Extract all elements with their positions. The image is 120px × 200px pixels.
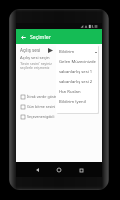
button[interactable]: İtirak vardır göstr [16, 93, 102, 100]
staticText: Seçevenenigdoli [27, 114, 55, 119]
staticText: Açılış sesi [20, 47, 41, 53]
button[interactable]: Bildirim (yeni) [59, 97, 98, 107]
staticText: İtirak vardır göstr [27, 94, 57, 99]
staticText: Gün bitme sesini [27, 104, 56, 109]
button[interactable]: Bildirim [59, 47, 98, 57]
staticText: Seçimler [30, 33, 51, 40]
staticText: Gelen Müzecinizde [59, 59, 96, 65]
button[interactable]: Back [29, 164, 45, 176]
staticText: 'Sesin sesini' neyiniz seçilerle erişmen… [20, 61, 52, 70]
staticText: Bildirim (yeni) [59, 99, 87, 105]
staticText: Açılış sesi seçin [20, 55, 50, 61]
staticText: sabanlarlış sesi 2 [59, 79, 93, 85]
button[interactable]: Home [51, 164, 67, 176]
button[interactable]: Seçevenenigdoli [16, 113, 102, 120]
button[interactable]: Açılış sesi [20, 46, 72, 54]
button[interactable]: Hızı Ruslan [59, 87, 98, 97]
staticText: Bildirim [59, 49, 75, 55]
button[interactable]: Gün bitme sesini [16, 103, 102, 110]
button[interactable]: sabanlarlış sesi 1 [59, 67, 98, 77]
staticText: Hızı Ruslan [59, 89, 81, 95]
button[interactable]: Gelen Müzecinizde [59, 57, 98, 67]
button[interactable]: Back [18, 32, 28, 42]
staticText: sabanlarlış sesi 1 [59, 69, 93, 75]
button[interactable]: Recent apps [73, 164, 89, 176]
button[interactable]: sabanlarlış sesi 2 [59, 77, 98, 87]
